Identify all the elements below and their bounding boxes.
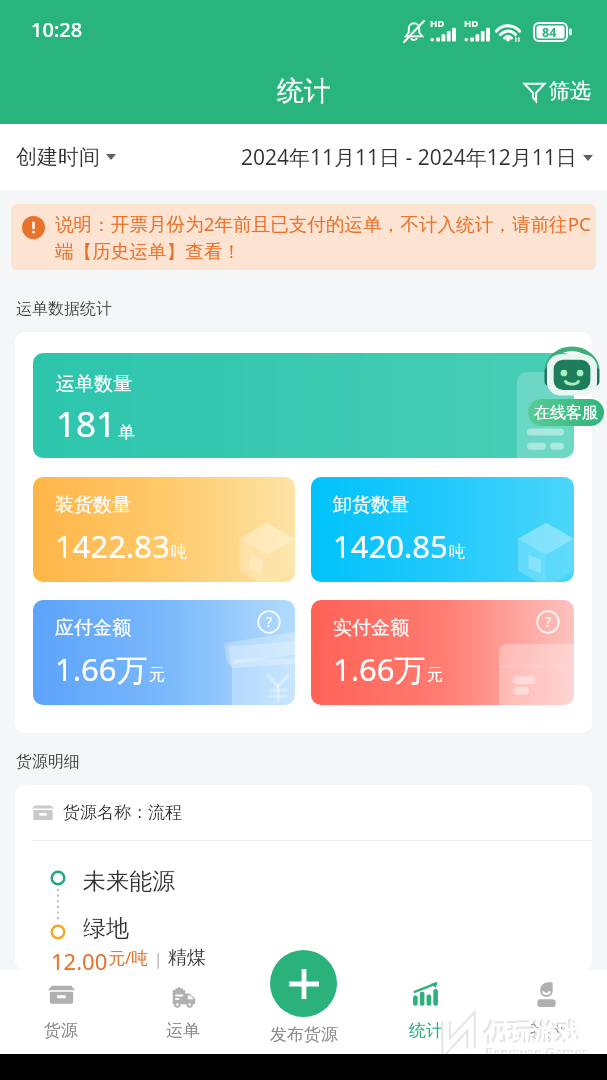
staticText: 仍玩游戏 — [483, 1017, 579, 1047]
button[interactable]: 货源名称：流程 — [15, 785, 592, 840]
staticText: 精煤 — [168, 946, 206, 970]
button[interactable]: 卸货数量 — [311, 477, 574, 582]
staticText: 1.66万 — [333, 648, 426, 690]
staticText: 发布货源 — [270, 1024, 338, 1045]
button[interactable]: 筛选 — [511, 70, 607, 112]
staticText: 筛选 — [549, 78, 591, 104]
button[interactable]: 发布货源 — [244, 950, 365, 1054]
staticText: 181 — [56, 400, 117, 448]
staticText: 1422.83 — [55, 525, 170, 567]
staticText: 统计 — [409, 1020, 443, 1041]
staticText: Rengwan Games — [487, 1045, 590, 1063]
staticText: HD — [464, 17, 479, 30]
button[interactable]: 2024年11月11日 - 2024年12月11日 — [233, 133, 607, 182]
staticText: 吨 — [171, 542, 187, 562]
staticText: 仍玩游戏 — [485, 1019, 581, 1049]
staticText: HD — [430, 17, 445, 30]
staticText: 运单数据统计 — [16, 299, 112, 319]
staticText: 1.66万 — [55, 648, 148, 690]
button[interactable]: 运单数量 — [33, 353, 574, 458]
staticText: ? — [266, 612, 273, 631]
staticText: 未来能源 — [83, 867, 175, 896]
staticText: 运单 — [166, 1020, 200, 1041]
button[interactable]: 装货数量 — [33, 477, 295, 582]
button[interactable]: 运单 — [122, 950, 244, 1054]
staticText: ? — [545, 612, 552, 631]
staticText: 应付金额 — [55, 616, 131, 640]
staticText: 10:28 — [31, 16, 83, 43]
staticText: | — [149, 947, 168, 970]
staticText: 绿地 — [83, 914, 129, 943]
button[interactable]: 应付金额 — [33, 600, 295, 705]
staticText: 吨 — [449, 542, 465, 562]
staticText: 创建时间 — [16, 144, 100, 170]
staticText: 元/吨 — [108, 946, 149, 969]
staticText: 统计 — [277, 74, 331, 108]
staticText: 84 — [542, 24, 557, 41]
staticText: 装货数量 — [55, 493, 131, 517]
button[interactable]: 货源 — [0, 950, 122, 1054]
staticText: 元 — [149, 665, 165, 685]
button[interactable]: 说明 — [536, 610, 560, 634]
button[interactable]: 创建时间 — [0, 134, 124, 180]
staticText: 单 — [118, 422, 135, 443]
button[interactable]: 在线客服 — [524, 353, 604, 426]
staticText: 实付金额 — [333, 616, 409, 640]
button[interactable]: 实付金额 — [311, 600, 574, 705]
button[interactable]: 发布货源 — [270, 950, 337, 1017]
button[interactable]: 统计 — [365, 950, 486, 1054]
staticText: 12.00 — [51, 946, 108, 971]
button[interactable]: 说明 — [257, 610, 281, 634]
staticText: 运单数量 — [56, 372, 132, 396]
staticText: 2024年11月11日 - 2024年12月11日 — [241, 143, 577, 172]
staticText: 货源 — [44, 1020, 78, 1041]
staticText: Rengwan Games — [485, 1043, 588, 1061]
staticText: 元 — [427, 665, 443, 685]
staticText: 卸货数量 — [333, 493, 409, 517]
staticText: 我的 — [530, 1020, 564, 1041]
staticText: 1420.85 — [333, 525, 448, 567]
staticText: 在线客服 — [534, 403, 598, 423]
staticText: 说明：开票月份为2年前且已支付的运单，不计入统计，请前往PC端【历史运单】查看！ — [55, 211, 592, 263]
button[interactable]: 我的 — [486, 950, 607, 1054]
staticText: 货源名称：流程 — [63, 802, 182, 823]
staticText: 货源明细 — [16, 752, 80, 772]
